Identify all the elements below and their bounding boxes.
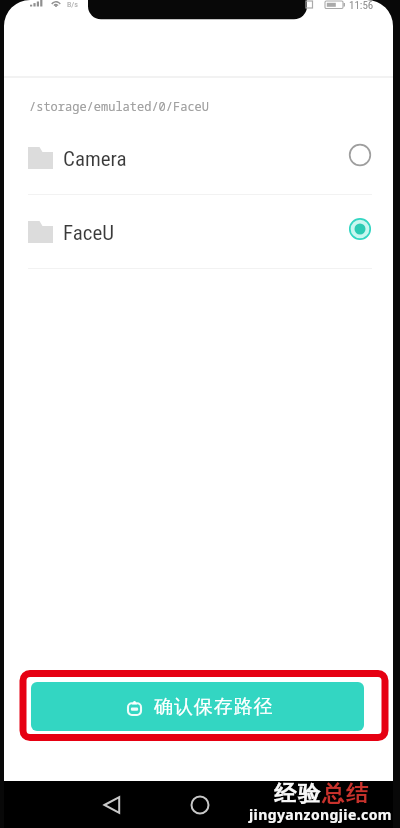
button[interactable]: 确认保存路径 bbox=[31, 682, 364, 731]
staticText: FaceU bbox=[63, 221, 115, 246]
button[interactable]: FaceU bbox=[0, 195, 400, 268]
button[interactable]: Home bbox=[180, 785, 220, 825]
staticText: 经验 bbox=[273, 780, 321, 808]
button[interactable]: Camera bbox=[0, 121, 400, 194]
staticText: Camera bbox=[63, 147, 127, 172]
button[interactable]: Back bbox=[92, 785, 132, 825]
staticText: 确认保存路径 bbox=[154, 695, 274, 719]
staticText: 11:56 bbox=[349, 0, 374, 12]
staticText: 总结 bbox=[321, 780, 369, 808]
staticText: B/s bbox=[67, 0, 78, 9]
staticText: jingyanzongjie.com bbox=[249, 805, 392, 824]
staticText: /storage/emulated/0/FaceU bbox=[29, 98, 210, 114]
